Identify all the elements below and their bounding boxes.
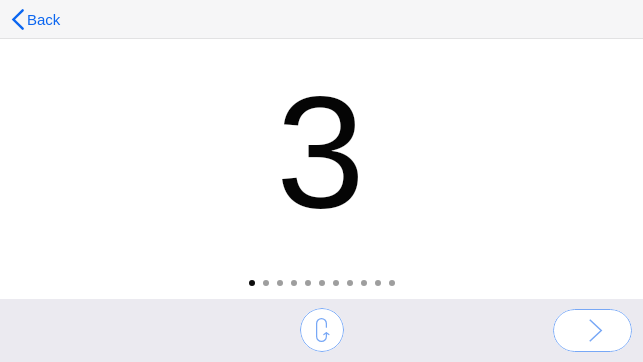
button[interactable]: Next (553, 309, 632, 352)
button[interactable]: Back (7, 4, 65, 35)
staticText: Back (27, 11, 61, 28)
staticText: 3 (276, 62, 365, 241)
button[interactable]: Replay (300, 308, 344, 352)
